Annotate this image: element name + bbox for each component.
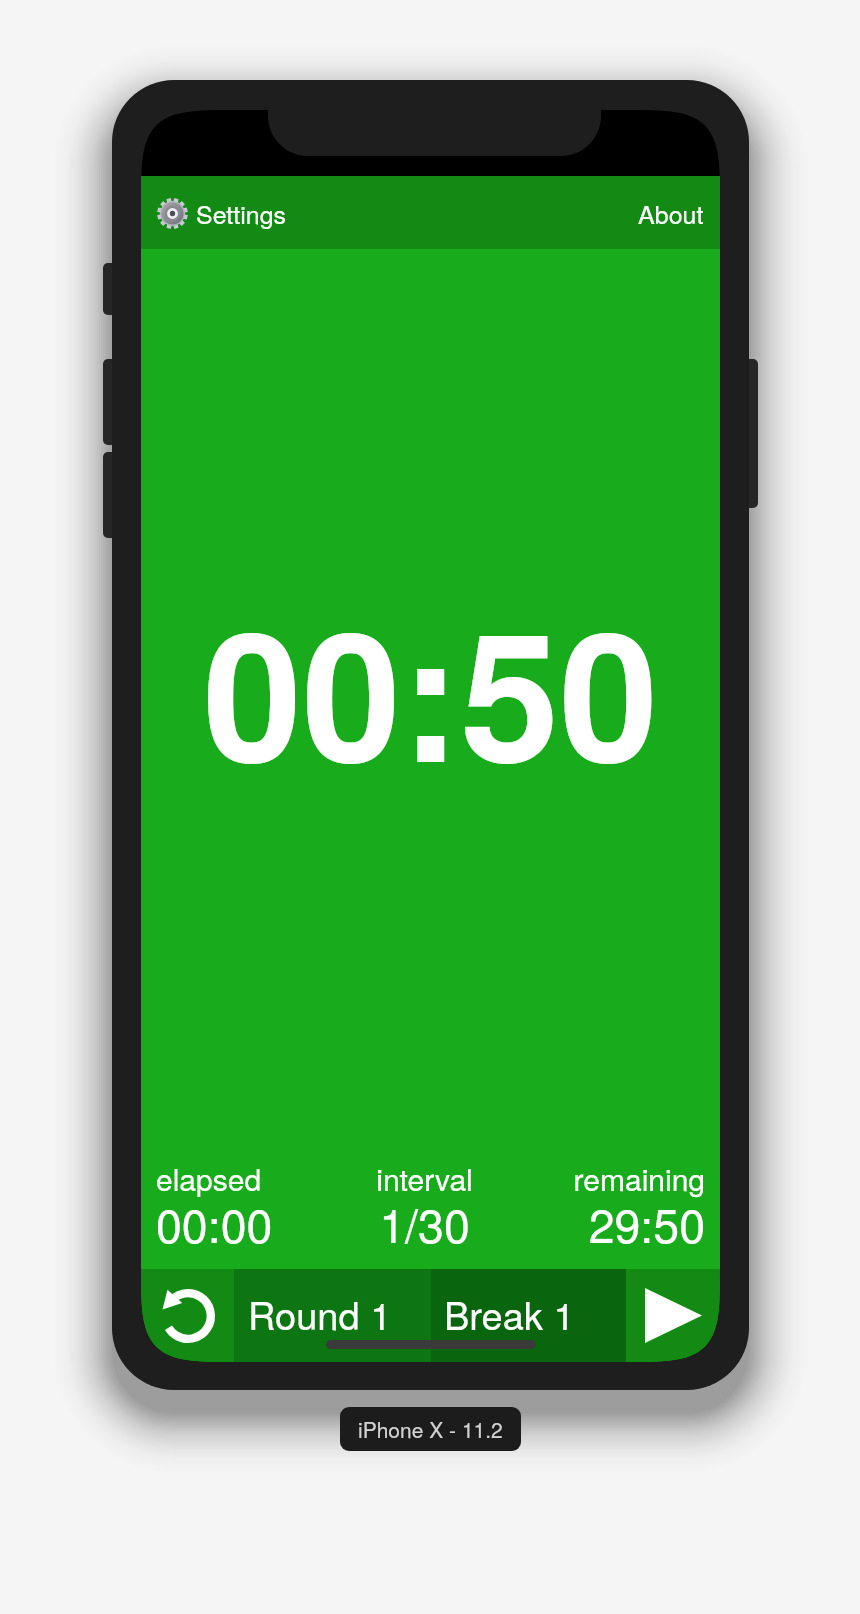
staticText: iPhone X - 11.2 <box>358 1414 503 1444</box>
staticText: elapsed <box>156 1157 336 1200</box>
staticText: Round 1 <box>248 1286 392 1340</box>
button[interactable]: About <box>622 181 720 245</box>
staticText: 29:50 <box>513 1190 705 1257</box>
staticText: 00:00 <box>156 1190 336 1257</box>
button[interactable]: Reset timer <box>141 1269 234 1362</box>
button[interactable]: Start timer <box>626 1269 720 1362</box>
staticText: Break 1 <box>444 1286 575 1340</box>
button[interactable]: Round 1 <box>234 1269 431 1362</box>
staticText: About <box>638 195 704 231</box>
staticText: remaining <box>513 1157 705 1200</box>
staticText: 1/30 <box>336 1190 513 1257</box>
staticText: Settings <box>196 195 287 231</box>
staticText: interval <box>336 1157 513 1200</box>
button[interactable]: Settings <box>141 181 297 245</box>
button[interactable]: Break 1 <box>431 1269 626 1362</box>
staticText: 00:50 <box>203 562 659 817</box>
